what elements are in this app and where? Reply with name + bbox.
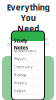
button[interactable]: History	[11, 79, 44, 87]
staticText: Everything You Need	[6, 2, 49, 34]
button[interactable]: Chemistry	[11, 63, 44, 71]
staticText: Study Notes	[13, 37, 28, 51]
staticText: Chemistry	[13, 64, 32, 69]
staticText: English	[13, 88, 25, 93]
staticText: Biology	[13, 72, 26, 77]
staticText: Physics	[13, 56, 26, 61]
staticText: Everything you need to prepare for your …	[7, 36, 49, 46]
button[interactable]: Biology	[11, 71, 44, 79]
button[interactable]: English	[11, 87, 44, 95]
staticText: History	[13, 80, 26, 85]
staticText: Mathematics	[13, 48, 36, 53]
button[interactable]: Physics	[11, 55, 44, 63]
button[interactable]: Mathematics	[11, 47, 44, 55]
